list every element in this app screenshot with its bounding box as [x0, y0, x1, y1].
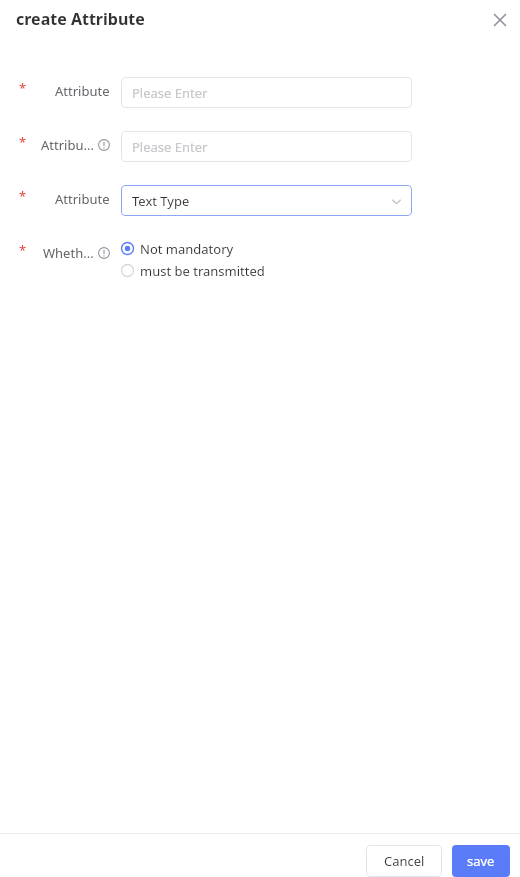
- staticText: create Attribute: [16, 8, 145, 30]
- staticText: must be transmitted: [140, 262, 265, 280]
- button[interactable]: Please Enter: [121, 131, 412, 162]
- button[interactable]: Cancel: [366, 845, 442, 877]
- button[interactable]: save: [452, 845, 510, 877]
- staticText: *: [19, 187, 27, 197]
- staticText: Please Enter: [132, 84, 208, 102]
- button[interactable]: Not mandatory: [121, 238, 234, 259]
- staticText: Text Type: [132, 192, 190, 210]
- staticText: Wheth...: [43, 244, 94, 262]
- staticText: Not mandatory: [140, 240, 234, 258]
- staticText: save: [467, 852, 495, 870]
- staticText: *: [19, 241, 27, 251]
- staticText: Attribu...: [41, 136, 94, 154]
- button[interactable]: Text Type: [121, 185, 412, 216]
- staticText: Attribute: [55, 82, 110, 100]
- staticText: Cancel: [384, 852, 425, 870]
- staticText: Please Enter: [132, 138, 208, 156]
- button[interactable]: Please Enter: [121, 77, 412, 108]
- staticText: Attribute: [55, 190, 110, 208]
- staticText: *: [19, 79, 27, 89]
- button[interactable]: must be transmitted: [121, 260, 265, 281]
- staticText: *: [19, 133, 27, 143]
- button[interactable]: Close: [486, 6, 514, 34]
